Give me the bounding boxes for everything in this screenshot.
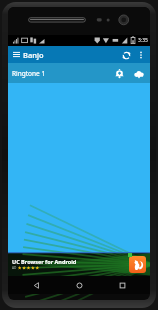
- button[interactable]: Ringtone 1: [8, 63, 150, 83]
- staticText: UC Browser for Android: [12, 258, 77, 265]
- button[interactable]: Open navigation drawer: [11, 49, 22, 60]
- staticText: Banjo: [23, 50, 44, 60]
- button[interactable]: UC Browser for Android: [8, 252, 150, 276]
- button[interactable]: Set as notification: [110, 64, 129, 83]
- button[interactable]: Refresh: [118, 47, 134, 63]
- staticText: 3:35: [138, 37, 148, 44]
- button[interactable]: Home: [64, 276, 94, 294]
- staticText: Ringtone 1: [12, 69, 46, 78]
- button[interactable]: UC Browser app icon: [129, 256, 146, 273]
- button[interactable]: Download: [129, 64, 148, 83]
- button[interactable]: Back: [21, 276, 51, 294]
- button[interactable]: More options: [134, 48, 148, 62]
- button[interactable]: Recent apps: [107, 276, 137, 294]
- staticText: AD: [12, 266, 17, 270]
